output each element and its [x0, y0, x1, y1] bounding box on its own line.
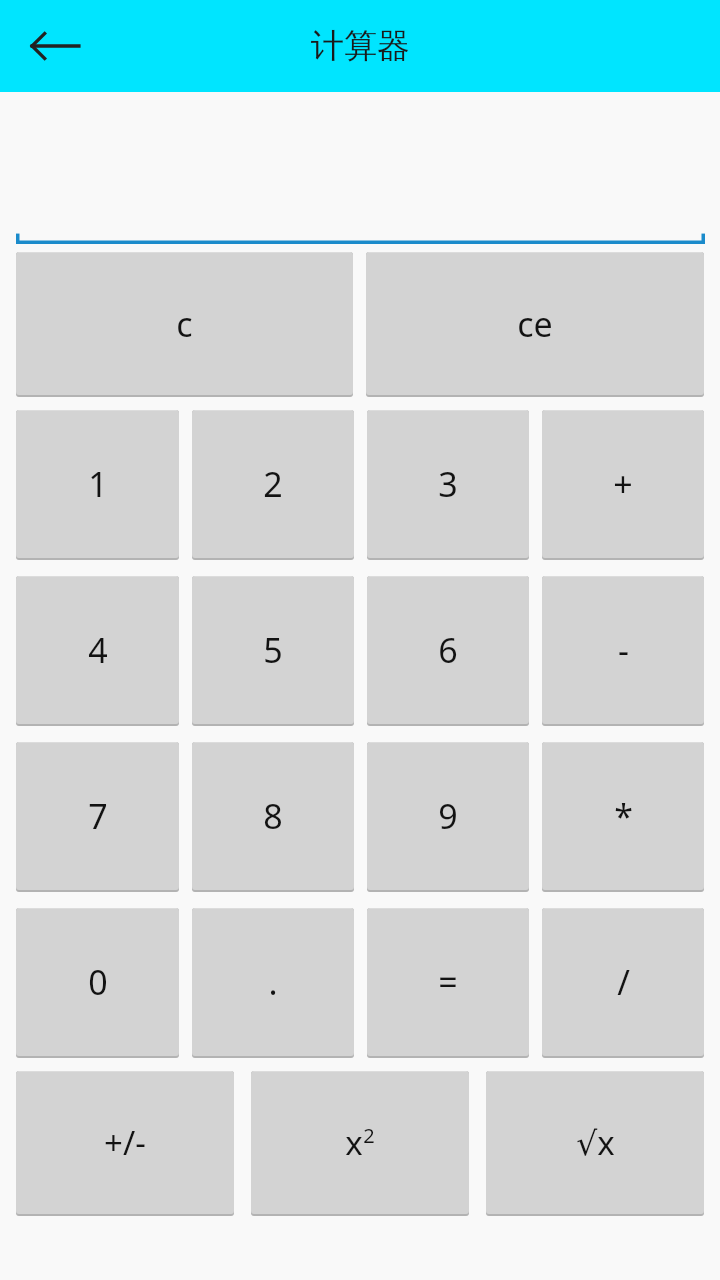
button[interactable]: 7 [16, 742, 179, 892]
staticText: 9 [438, 793, 458, 839]
button[interactable]: c [16, 252, 353, 397]
button[interactable]: + [542, 410, 704, 560]
button[interactable]: 4 [16, 576, 179, 726]
button[interactable]: / [542, 908, 704, 1058]
staticText: √x [576, 1120, 615, 1165]
button[interactable]: ce [366, 252, 704, 397]
button[interactable]: 6 [367, 576, 529, 726]
staticText: . [268, 959, 278, 1005]
button[interactable]: 1 [16, 410, 179, 560]
staticText: x [345, 1120, 363, 1165]
button[interactable]: 5 [192, 576, 354, 726]
button[interactable]: 2 [192, 410, 354, 560]
button[interactable]: x [251, 1071, 469, 1216]
button[interactable]: Back [22, 17, 88, 75]
button[interactable]: 0 [16, 908, 179, 1058]
button[interactable]: √x [486, 1071, 704, 1216]
button[interactable]: 3 [367, 410, 529, 560]
button[interactable]: 9 [367, 742, 529, 892]
button[interactable]: . [192, 908, 354, 1058]
staticText: 2 [363, 1122, 375, 1149]
button[interactable]: - [542, 576, 704, 726]
staticText: ce [517, 301, 553, 347]
staticText: 2 [263, 461, 283, 507]
staticText: 1 [88, 461, 108, 507]
staticText: 3 [438, 461, 458, 507]
button[interactable]: * [542, 742, 704, 892]
staticText: + [613, 461, 633, 507]
staticText: 4 [88, 627, 108, 673]
button[interactable]: = [367, 908, 529, 1058]
staticText: - [618, 627, 629, 673]
staticText: = [438, 959, 458, 1005]
button[interactable]: +/- [16, 1071, 234, 1216]
button[interactable]: 8 [192, 742, 354, 892]
staticText: 6 [438, 627, 458, 673]
staticText: +/- [104, 1120, 146, 1165]
staticText: 计算器 [311, 25, 410, 67]
staticText: / [617, 959, 630, 1005]
staticText: 5 [263, 627, 283, 673]
staticText: 8 [263, 793, 283, 839]
staticText: * [614, 793, 633, 839]
staticText: c [176, 301, 193, 347]
staticText: 7 [88, 793, 108, 839]
staticText: 0 [88, 959, 108, 1005]
